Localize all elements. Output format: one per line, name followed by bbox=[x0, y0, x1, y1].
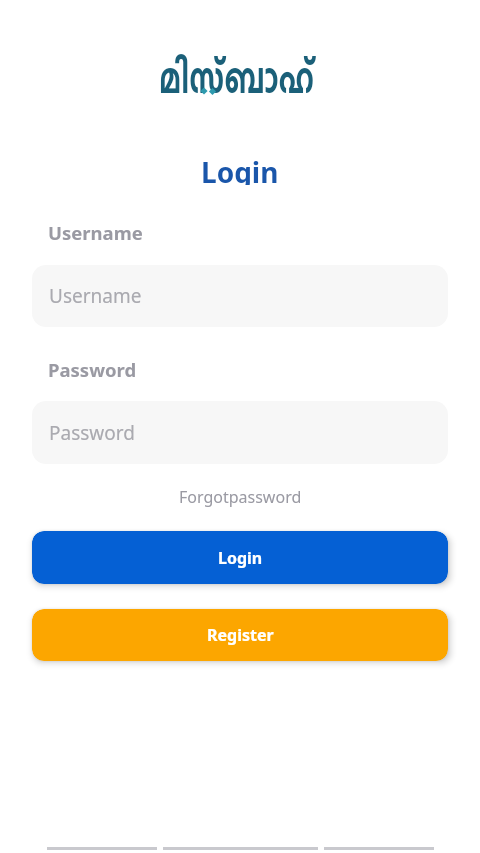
button[interactable]: Login bbox=[32, 531, 448, 584]
staticText: മിസ്ബാഹ് bbox=[159, 49, 314, 118]
button[interactable]: Password bbox=[32, 401, 448, 464]
staticText: Password bbox=[48, 357, 137, 382]
staticText: Login bbox=[218, 547, 263, 569]
staticText: Register bbox=[207, 624, 274, 646]
staticText: Password bbox=[49, 420, 135, 446]
staticText: Login bbox=[201, 153, 279, 185]
staticText: Username bbox=[48, 220, 143, 245]
button[interactable]: Register bbox=[32, 609, 448, 661]
button[interactable]: Forgotpassword bbox=[179, 486, 302, 508]
staticText: Forgotpassword bbox=[179, 486, 302, 508]
staticText: Username bbox=[49, 283, 142, 309]
button[interactable]: Username bbox=[32, 265, 448, 327]
